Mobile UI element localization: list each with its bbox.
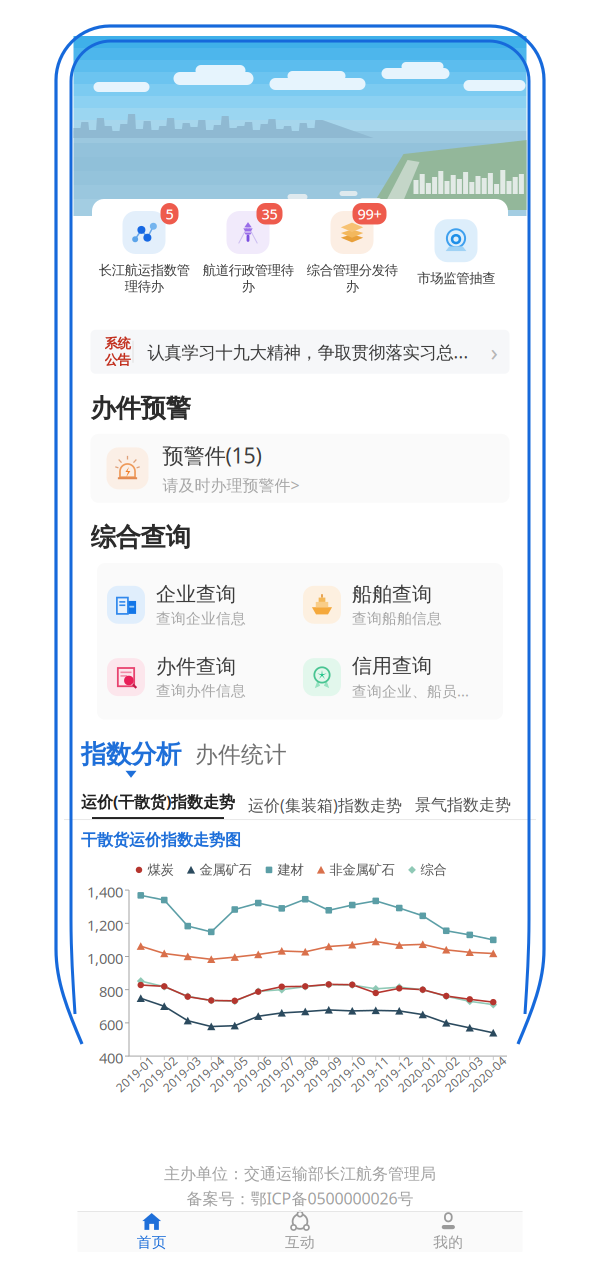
staticText: 35 <box>261 204 277 223</box>
staticText: 办件统计 <box>195 741 287 768</box>
staticText: 航道行政管理待办 <box>202 262 293 295</box>
staticText: 99+ <box>357 204 381 223</box>
staticText: 干散货运价指数走势图 <box>81 830 241 850</box>
staticText: 办件查询 <box>156 654 236 679</box>
staticText: 2020-02 <box>417 1066 463 1082</box>
staticText: 查询船舶信息 <box>352 610 442 628</box>
staticText: 运价(集装箱)指数走势 <box>248 794 402 815</box>
button[interactable]: 我的 <box>374 1211 522 1251</box>
staticText: 2019-12 <box>370 1066 416 1082</box>
button[interactable]: 运价(集装箱)指数走势 <box>248 794 402 815</box>
staticText: 我的 <box>433 1233 463 1251</box>
staticText: 信用查询 <box>352 654 432 678</box>
staticText: 主办单位：交通运输部长江航务管理局 <box>164 1164 436 1184</box>
button[interactable]: 35 <box>196 211 300 295</box>
button[interactable]: 指数分析 <box>81 739 181 770</box>
staticText: 600 <box>99 1015 123 1034</box>
staticText: 认真学习十九大精神，争取贯彻落实习总书记讲话 <box>147 340 482 363</box>
staticText: 查询企业信息 <box>156 610 246 628</box>
staticText: 2019-10 <box>323 1066 369 1082</box>
staticText: 市场监管抽查 <box>417 270 495 287</box>
staticText: 非金属矿石 <box>329 862 394 878</box>
button[interactable]: 企业查询 <box>107 582 297 628</box>
staticText: 2019-09 <box>300 1066 346 1082</box>
button[interactable]: 景气指数走势 <box>415 795 511 815</box>
staticText: 2019-06 <box>229 1066 275 1082</box>
staticText: 2019-04 <box>182 1066 228 1082</box>
button[interactable]: 办件查询 <box>107 654 297 700</box>
staticText: 综合 <box>420 862 446 878</box>
button[interactable]: 运价(干散货)指数走势 <box>81 791 235 812</box>
staticText: 船舶查询 <box>352 582 432 607</box>
button[interactable]: 系统 <box>73 330 526 374</box>
staticText: 综合查询 <box>90 522 190 553</box>
staticText: 首页 <box>137 1233 167 1251</box>
staticText: 公告 <box>104 352 130 368</box>
staticText: 景气指数走势 <box>415 795 511 815</box>
staticText: 2020-01 <box>394 1066 440 1082</box>
staticText: 2019-02 <box>135 1066 181 1082</box>
staticText: 指数分析 <box>81 739 181 770</box>
staticText: 预警件(15) <box>162 441 261 469</box>
staticText: 互动 <box>285 1233 315 1251</box>
staticText: 查询办件信息 <box>156 682 246 700</box>
staticText: 备案号：鄂ICP备0500000026号 <box>186 1188 413 1209</box>
staticText: 1,400 <box>87 882 123 902</box>
staticText: 长江航运指数管理待办 <box>98 262 189 295</box>
staticText: 2019-05 <box>206 1066 252 1082</box>
staticText: 请及时办理预警件> <box>162 474 299 496</box>
staticText: 运价(干散货)指数走势 <box>81 791 235 812</box>
button[interactable]: 互动 <box>226 1211 374 1251</box>
staticText: 2019-11 <box>347 1066 393 1082</box>
staticText: 2019-03 <box>159 1066 205 1082</box>
staticText: 1,200 <box>87 915 123 935</box>
staticText: 办件预警 <box>90 393 190 424</box>
staticText: 金属矿石 <box>199 862 251 878</box>
staticText: 2019-07 <box>253 1066 299 1082</box>
button[interactable]: 信用查询 <box>303 654 493 701</box>
staticText: 2020-04 <box>464 1066 510 1082</box>
staticText: 查询企业、船员信用 <box>352 681 474 701</box>
staticText: 400 <box>99 1048 123 1068</box>
staticText: 5 <box>165 204 173 223</box>
staticText: 800 <box>99 982 123 1001</box>
staticText: › <box>490 336 497 368</box>
button[interactable]: 5 <box>92 211 196 295</box>
staticText: 2020-03 <box>441 1066 487 1082</box>
staticText: 系统 <box>104 335 130 352</box>
staticText: 煤炭 <box>147 862 173 878</box>
button[interactable]: 首页 <box>77 1211 226 1251</box>
staticText: 综合管理分发待办 <box>306 262 397 295</box>
staticText: 2019-01 <box>112 1066 158 1082</box>
staticText: 建材 <box>277 862 303 878</box>
button[interactable]: 船舶查询 <box>303 582 493 628</box>
button[interactable]: 99+ <box>300 211 404 295</box>
button[interactable]: 预警件(15) <box>73 434 526 503</box>
button[interactable]: 办件统计 <box>195 741 287 768</box>
staticText: 2019-08 <box>276 1066 322 1082</box>
staticText: 1,000 <box>87 948 123 968</box>
button[interactable]: 市场监管抽查 <box>404 219 508 287</box>
staticText: 企业查询 <box>156 582 236 607</box>
